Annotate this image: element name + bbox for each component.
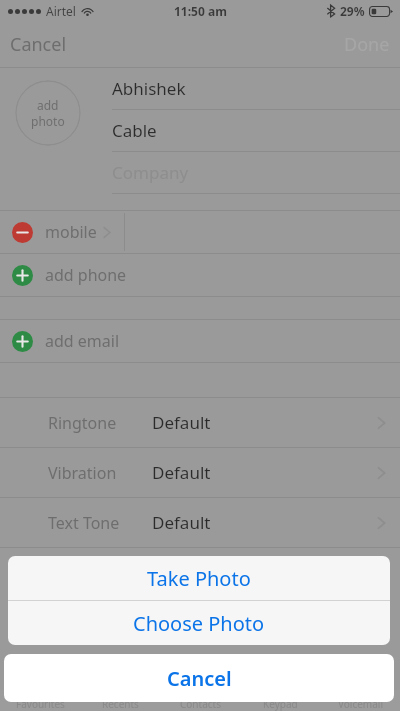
staticText: Default — [152, 411, 211, 434]
button[interactable]: Cancel — [0, 24, 77, 65]
staticText: Cable — [112, 119, 157, 142]
button[interactable]: Recents — [80, 690, 160, 711]
button[interactable]: Voicemail — [320, 690, 400, 711]
button[interactable]: Ringtone — [0, 398, 400, 447]
button[interactable]: Text Tone — [0, 498, 400, 547]
staticText: Contacts — [180, 697, 221, 711]
button[interactable]: Vibration — [0, 448, 400, 497]
button[interactable]: add phone — [0, 254, 400, 296]
staticText: Default — [152, 511, 211, 534]
staticText: Recents — [102, 697, 139, 711]
staticText: Choose Photo — [133, 610, 265, 637]
staticText: 29% — [340, 3, 365, 19]
staticText: Voicemail — [338, 697, 383, 711]
button[interactable]: Take Photo — [8, 556, 390, 600]
staticText: Abhishek — [112, 77, 186, 100]
button[interactable]: Add photo — [15, 80, 81, 146]
staticText: 11:50 am — [174, 3, 227, 19]
button[interactable]: Cable — [112, 110, 400, 151]
staticText: add phone — [45, 264, 127, 286]
button[interactable]: Contacts — [160, 690, 240, 711]
button[interactable]: Choose Photo — [8, 601, 390, 645]
staticText: add email — [45, 330, 120, 352]
button[interactable]: Cancel — [4, 654, 394, 702]
staticText: Airtel — [46, 3, 76, 19]
button[interactable]: add email — [0, 320, 400, 362]
staticText: Take Photo — [147, 565, 251, 592]
staticText: Keypad — [263, 697, 298, 711]
button[interactable]: Favourites — [0, 690, 80, 711]
staticText: Cancel — [167, 665, 232, 692]
staticText: mobile — [45, 221, 97, 243]
button[interactable]: Keypad — [240, 690, 320, 711]
staticText: Done — [344, 32, 390, 57]
staticText: Text Tone — [48, 512, 120, 534]
staticText: Company — [112, 161, 189, 184]
staticText: add — [37, 97, 59, 113]
staticText: Favourites — [16, 697, 65, 711]
staticText: Vibration — [48, 462, 117, 484]
staticText: Default — [152, 461, 211, 484]
button[interactable]: mobile — [0, 211, 400, 253]
staticText: Cancel — [10, 32, 67, 57]
button[interactable]: Abhishek — [112, 68, 400, 109]
staticText: photo — [31, 113, 65, 129]
staticText: Ringtone — [48, 412, 117, 434]
